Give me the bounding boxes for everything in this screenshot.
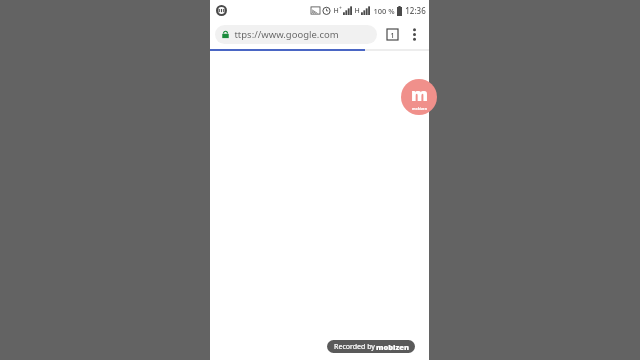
staticText: H	[333, 6, 339, 16]
staticText: 12:36	[405, 5, 426, 16]
staticText: 1	[390, 30, 395, 40]
button[interactable]: Tabs	[383, 25, 402, 44]
staticText: 100 %	[373, 6, 395, 16]
staticText: Recorded by	[333, 342, 376, 352]
staticText: H	[354, 6, 360, 16]
staticText: ttps://www.google.com	[234, 28, 339, 41]
staticText: m	[411, 83, 428, 106]
staticText: mobizen	[412, 106, 427, 111]
button[interactable]: More options	[405, 25, 424, 44]
staticText: mobizen	[376, 342, 409, 352]
button[interactable]: ttps://www.google.com	[215, 25, 377, 44]
staticText: +	[339, 5, 342, 12]
